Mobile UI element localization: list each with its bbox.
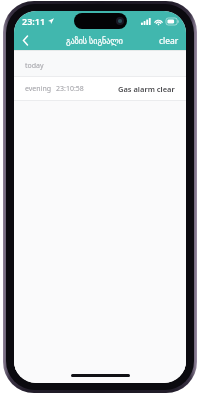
button[interactable]: evening [14, 77, 186, 100]
staticText: clear [159, 35, 179, 47]
button[interactable]: Back [14, 31, 37, 50]
staticText: 23:10:58 [56, 84, 84, 94]
staticText: Gas alarm clear [118, 84, 175, 94]
staticText: evening [25, 84, 52, 94]
staticText: today [25, 61, 44, 71]
button[interactable]: clear [152, 31, 186, 50]
staticText: გაზის სიგნალი [66, 35, 123, 46]
staticText: 23:11 [22, 15, 46, 27]
